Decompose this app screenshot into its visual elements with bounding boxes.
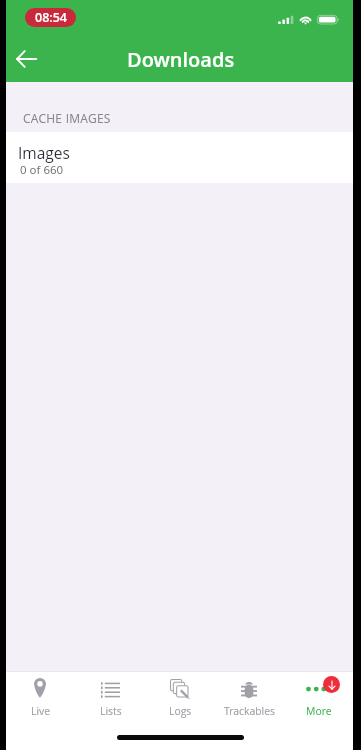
staticText: Downloads bbox=[127, 46, 235, 73]
staticText: Live bbox=[31, 704, 51, 718]
staticText: More bbox=[306, 704, 332, 718]
button[interactable]: Back bbox=[7, 40, 45, 78]
staticText: CACHE IMAGES bbox=[23, 110, 111, 126]
button[interactable]: Images bbox=[6, 132, 353, 183]
button[interactable]: Lists bbox=[76, 672, 146, 722]
button[interactable]: Trackables bbox=[215, 672, 284, 722]
staticText: 08:54 bbox=[35, 9, 67, 26]
staticText: Trackables bbox=[224, 704, 276, 718]
staticText: 0 of 660 bbox=[20, 162, 64, 178]
button[interactable]: Downloads pending bbox=[284, 672, 353, 722]
button[interactable]: Recording 08:54 bbox=[25, 8, 76, 27]
staticText: Lists bbox=[100, 704, 122, 718]
button[interactable]: Live bbox=[6, 672, 76, 722]
other: Downloads pending bbox=[323, 676, 340, 693]
staticText: Logs bbox=[169, 704, 192, 718]
staticText: Images bbox=[18, 142, 70, 163]
button[interactable]: Logs bbox=[146, 672, 215, 722]
